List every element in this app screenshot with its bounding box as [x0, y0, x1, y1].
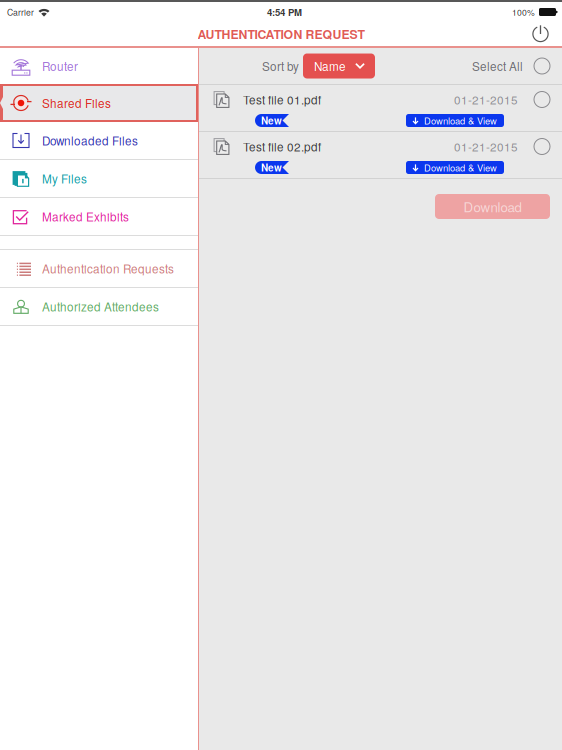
staticText: New [261, 160, 282, 175]
staticText: Authorized Attendees [42, 298, 159, 315]
button[interactable]: Download [435, 194, 550, 219]
staticText: Test file 01.pdf [243, 91, 321, 108]
button[interactable]: Power [531, 24, 562, 44]
staticText: Download & View [424, 114, 497, 127]
button[interactable]: Name [303, 53, 375, 78]
button[interactable]: Marked Exhibits [0, 198, 198, 235]
staticText: 4:54 PM [267, 5, 302, 19]
button[interactable]: Download & View [406, 114, 504, 127]
staticText: Router [42, 58, 78, 74]
button[interactable]: Select Test file 02.pdf [518, 138, 562, 154]
staticText: 01-21-2015 [454, 91, 518, 108]
button[interactable]: Select All [472, 58, 562, 74]
staticText: 01-21-2015 [454, 138, 518, 155]
staticText: Marked Exhibits [42, 208, 129, 225]
button[interactable]: My Files [0, 160, 198, 197]
staticText: Name [314, 58, 346, 74]
button[interactable]: Select Test file 01.pdf [518, 91, 562, 107]
staticText: New [261, 113, 282, 128]
button[interactable]: Router [0, 48, 198, 84]
staticText: Downloaded Files [42, 132, 138, 149]
staticText: Download & View [424, 161, 497, 174]
staticText: Authentication Requests [42, 260, 174, 277]
staticText: My Files [42, 170, 87, 187]
staticText: Select All [472, 58, 523, 74]
staticText: Shared Files [42, 95, 111, 111]
button[interactable]: Download & View [406, 161, 504, 174]
staticText: Sort by [262, 58, 299, 74]
staticText: Carrier [7, 6, 34, 18]
button[interactable]: Downloaded Files [0, 122, 198, 159]
staticText: Download [463, 197, 521, 216]
staticText: AUTHENTICATION REQUEST [197, 25, 364, 43]
staticText: Test file 02.pdf [243, 138, 321, 155]
button[interactable]: Authentication Requests [0, 250, 198, 287]
button[interactable]: Authorized Attendees [0, 288, 198, 325]
staticText: 100% [512, 6, 535, 18]
button[interactable]: Shared Files [0, 84, 198, 122]
